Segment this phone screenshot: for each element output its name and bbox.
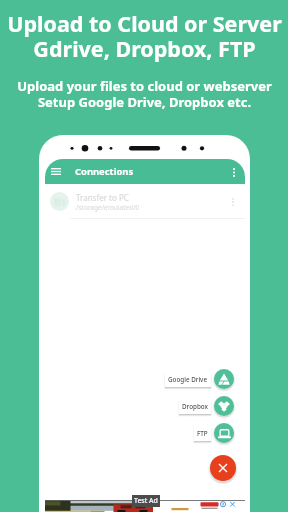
button[interactable]: Transfer to PC bbox=[45, 184, 245, 219]
button[interactable]: More options bbox=[225, 163, 243, 181]
button[interactable]: Dropbox bbox=[182, 402, 208, 411]
button[interactable]: Advertisement bbox=[45, 500, 245, 512]
button[interactable]: Google Drive bbox=[214, 369, 234, 389]
staticText: Connections bbox=[75, 165, 134, 178]
staticText: /storage/emulated/0 bbox=[76, 203, 140, 212]
staticText: Upload your files to cloud or webserver … bbox=[17, 77, 272, 111]
button[interactable]: FTP bbox=[197, 429, 208, 438]
staticText: FTP bbox=[197, 429, 208, 438]
button[interactable]: FTP bbox=[214, 423, 234, 443]
button[interactable]: Dropbox bbox=[214, 396, 234, 416]
button[interactable]: Close menu bbox=[210, 455, 236, 481]
button[interactable]: Google Drive bbox=[168, 375, 208, 384]
staticText: Test Ad bbox=[134, 496, 158, 506]
staticText: Google Drive bbox=[168, 375, 208, 384]
staticText: Transfer to PC bbox=[76, 192, 129, 203]
button[interactable]: Row options bbox=[225, 194, 241, 210]
staticText: Upload to Cloud or Server Gdrive, Dropbo… bbox=[7, 9, 282, 63]
staticText: Dropbox bbox=[182, 402, 208, 411]
button[interactable]: Open navigation menu bbox=[46, 162, 65, 181]
